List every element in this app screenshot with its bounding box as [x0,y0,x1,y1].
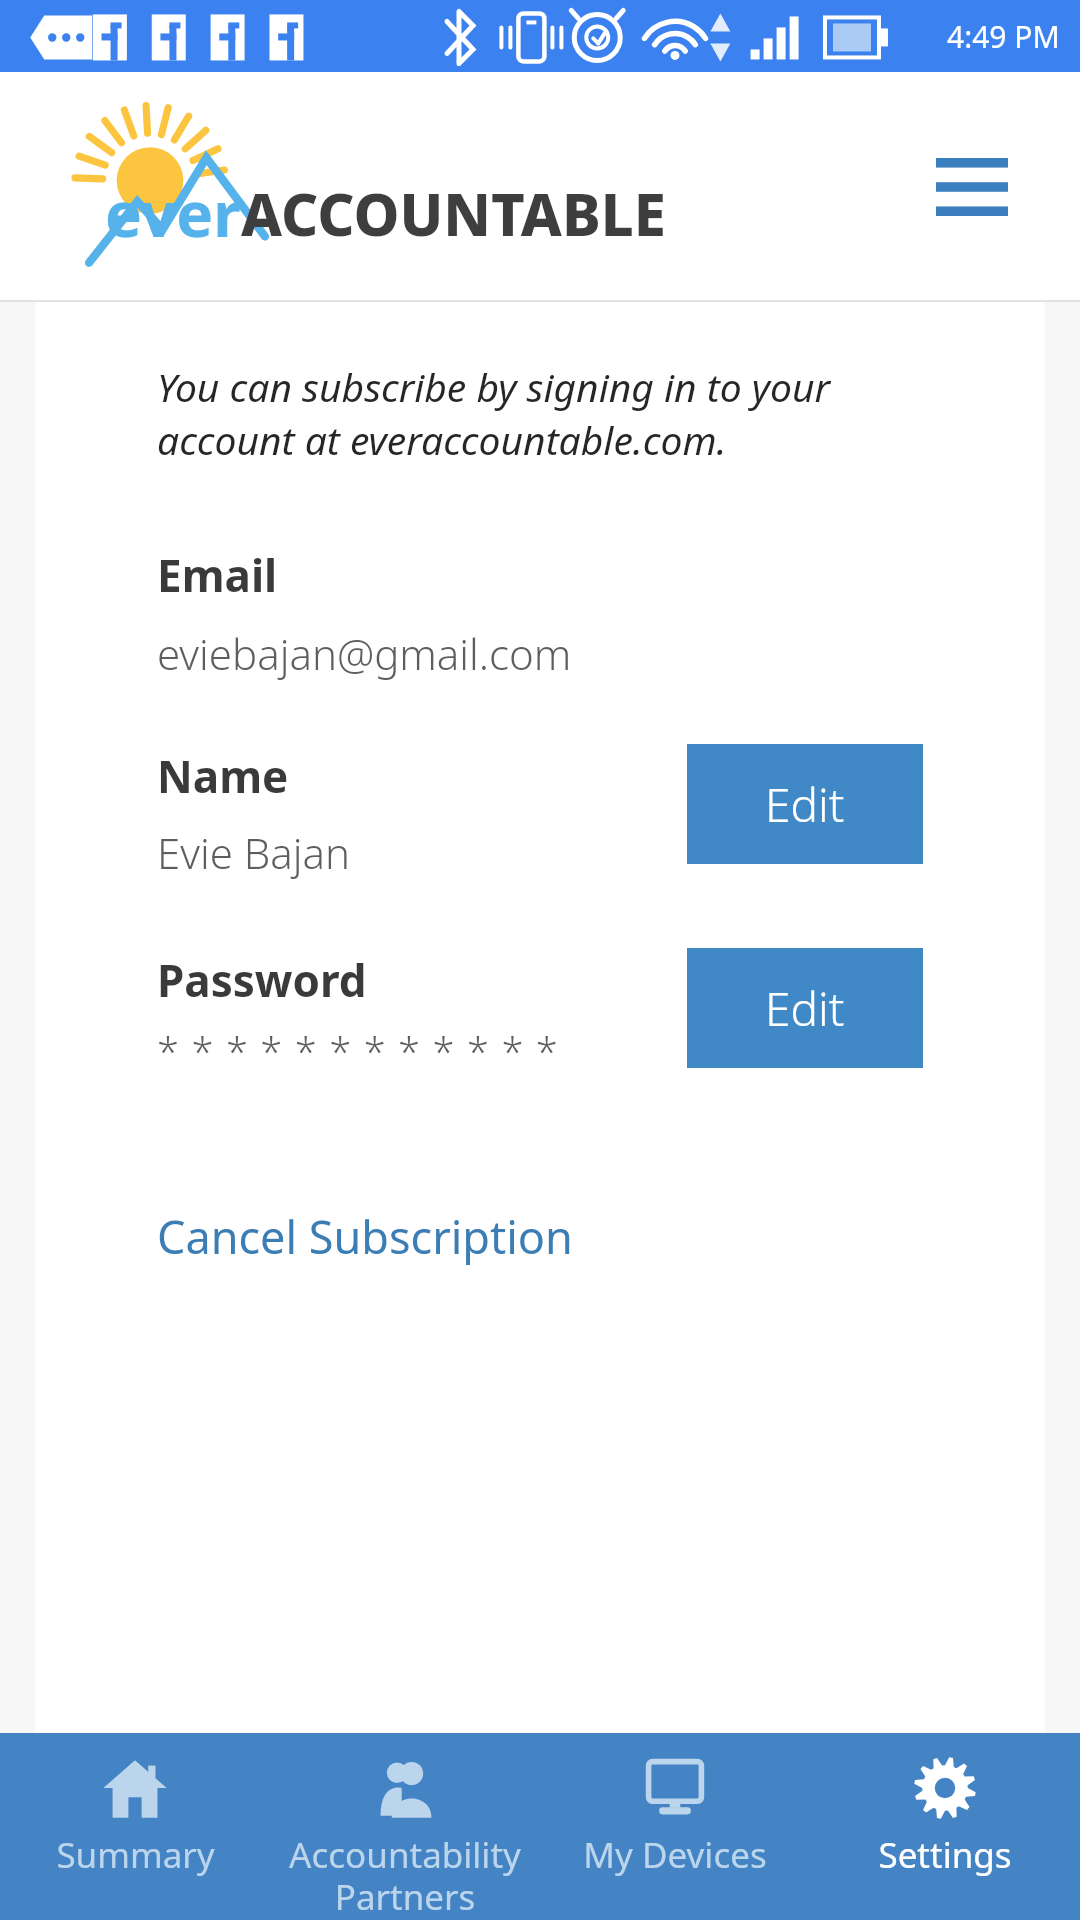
staticText: ACCOUNTABLE [241,174,666,253]
staticText: Cancel Subscription [157,1206,573,1267]
staticText: ever [105,171,241,255]
staticText: Edit [765,773,845,836]
staticText: Email [157,545,278,605]
staticText: eviebajan@gmail.com [157,625,572,682]
button[interactable]: Accountability Partners [270,1733,540,1920]
staticText: 4:49 PM [947,16,1060,57]
staticText: Accountability Partners [289,1831,521,1920]
button[interactable]: Cancel Subscription [147,1198,583,1275]
staticText: Edit [765,977,845,1040]
button[interactable]: Edit [687,744,923,864]
staticText: Settings [878,1831,1012,1879]
staticText: Evie Bajan [157,824,351,881]
button[interactable]: Open menu [922,142,1022,232]
staticText: You can subscribe by signing in to your … [157,360,925,467]
button[interactable]: Settings [810,1733,1080,1920]
staticText: My Devices [583,1831,767,1879]
button[interactable]: Edit [687,948,923,1068]
staticText: Name [157,746,289,806]
staticText: Summary [56,1831,215,1879]
button[interactable]: Summary [0,1733,270,1920]
button[interactable]: My Devices [540,1733,810,1920]
staticText: * * * * * * * * * * * * [157,1024,559,1078]
staticText: Password [157,950,367,1010]
